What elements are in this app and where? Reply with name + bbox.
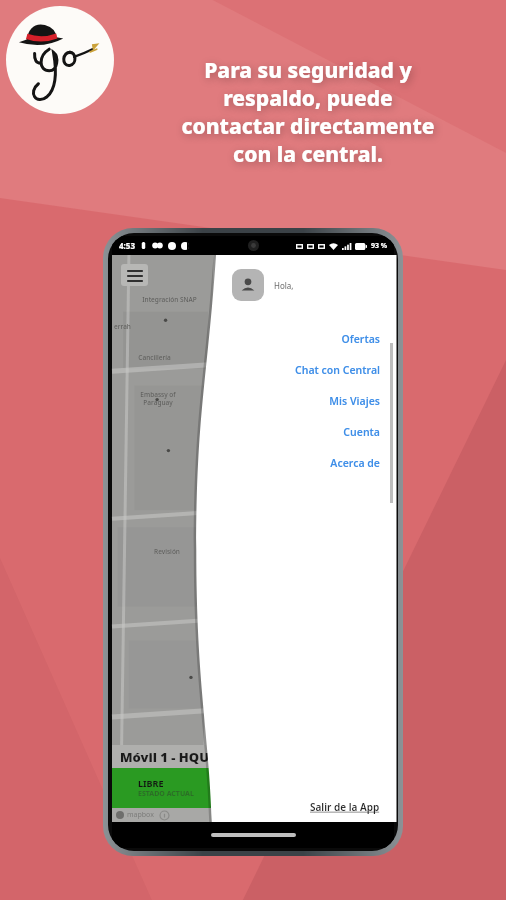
button[interactable]: Ofertas [232, 323, 380, 354]
staticText: Cuenta [343, 425, 380, 439]
staticText: Acerca de [330, 456, 380, 470]
staticText: Embassy of Paraguay [140, 390, 176, 407]
button[interactable]: Abrir menú [121, 264, 148, 286]
staticText: LIBRE [138, 777, 164, 789]
staticText: Para su seguridad y respaldo, puede cont… [118, 56, 498, 168]
staticText: Mis Viajes [329, 394, 380, 408]
staticText: 4:53 [119, 240, 135, 251]
staticText: 93 % [371, 241, 388, 251]
staticText: ESTADO ACTUAL [138, 789, 194, 799]
staticText: Salir de la App [310, 800, 380, 814]
other: Logo igo [6, 6, 114, 114]
staticText: Integración SNAP [142, 295, 197, 304]
button[interactable]: Hola, [232, 269, 380, 301]
button[interactable]: Cuenta [232, 416, 380, 447]
staticText: errah [114, 322, 131, 331]
staticText: mapbox [127, 810, 154, 820]
staticText: Hola, [274, 280, 294, 291]
staticText: Chat con Central [295, 363, 380, 377]
staticText: Revisión [154, 547, 180, 556]
button[interactable]: Salir de la App [232, 800, 380, 814]
button[interactable]: Mis Viajes [232, 385, 380, 416]
staticText: Cancillería [138, 353, 171, 362]
staticText: Ofertas [341, 332, 380, 346]
staticText: Móvil 1 - HQU6U [120, 748, 227, 766]
button[interactable]: Chat con Central [232, 354, 380, 385]
button[interactable]: Acerca de [232, 447, 380, 478]
